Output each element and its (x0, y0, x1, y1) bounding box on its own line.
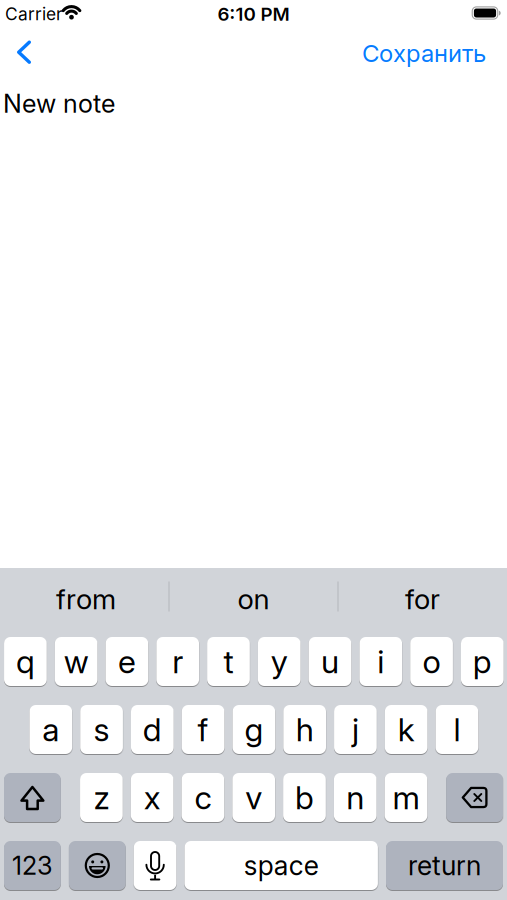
button[interactable]: e (106, 637, 148, 686)
staticText: space (244, 850, 319, 881)
staticText: g (244, 711, 263, 748)
button[interactable]: return (386, 841, 503, 890)
button[interactable] (69, 841, 126, 890)
staticText: o (423, 643, 441, 680)
staticText: 6:10 PM (217, 3, 289, 25)
staticText: r (172, 643, 183, 680)
staticText: h (296, 711, 314, 748)
button[interactable]: h (283, 705, 326, 754)
staticText: return (408, 850, 481, 881)
button[interactable]: u (309, 637, 351, 686)
button[interactable]: for (338, 568, 506, 630)
button[interactable]: c (182, 773, 224, 822)
staticText: 123 (12, 851, 53, 880)
button[interactable]: on (169, 568, 337, 630)
staticText: for (405, 582, 440, 615)
button[interactable]: p (461, 637, 504, 686)
button[interactable]: z (80, 773, 123, 822)
button[interactable] (446, 773, 503, 822)
staticText: i (377, 643, 384, 680)
button[interactable]: g (232, 705, 275, 754)
button[interactable]: x (131, 773, 173, 822)
staticText: from (56, 582, 116, 615)
button[interactable]: n (334, 773, 377, 822)
staticText: n (346, 779, 364, 816)
button[interactable]: Сохранить (362, 39, 486, 67)
button[interactable] (134, 841, 176, 890)
button[interactable]: w (55, 637, 97, 686)
button[interactable]: k (385, 705, 427, 754)
button[interactable]: o (410, 637, 453, 686)
staticText: p (473, 643, 492, 680)
staticText: u (321, 643, 339, 680)
button[interactable]: q (4, 637, 47, 686)
button[interactable]: m (385, 773, 427, 822)
button[interactable]: y (258, 637, 301, 686)
staticText: Сохранить (362, 39, 486, 67)
button[interactable]: from (2, 568, 170, 630)
button[interactable]: s (80, 705, 123, 754)
staticText: k (398, 711, 415, 748)
staticText: w (64, 643, 89, 680)
staticText: c (194, 779, 211, 816)
staticText: Carrier (5, 4, 63, 24)
staticText: e (118, 643, 136, 680)
button[interactable]: i (359, 637, 402, 686)
button[interactable]: d (131, 705, 174, 754)
staticText: d (143, 711, 162, 748)
button[interactable] (7, 35, 41, 69)
staticText: New note (3, 89, 115, 118)
button[interactable]: t (207, 637, 250, 686)
staticText: x (144, 779, 161, 816)
staticText: l (453, 711, 460, 748)
staticText: t (223, 643, 233, 680)
button[interactable]: j (334, 705, 377, 754)
staticText: y (271, 643, 288, 680)
staticText: v (245, 779, 262, 816)
staticText: j (352, 711, 359, 748)
button[interactable]: 123 (4, 841, 61, 890)
button[interactable]: v (232, 773, 275, 822)
staticText: s (94, 711, 110, 748)
button[interactable] (4, 773, 61, 822)
button[interactable]: l (436, 705, 478, 754)
staticText: a (42, 711, 59, 748)
button[interactable]: r (156, 637, 199, 686)
staticText: q (16, 643, 35, 680)
staticText: b (295, 779, 314, 816)
staticText: on (237, 582, 269, 615)
button[interactable]: b (283, 773, 326, 822)
staticText: z (93, 779, 109, 816)
staticText: m (392, 779, 419, 816)
button[interactable]: f (182, 705, 224, 754)
button[interactable]: space (184, 841, 378, 890)
button[interactable]: a (29, 705, 72, 754)
staticText: f (198, 711, 209, 748)
